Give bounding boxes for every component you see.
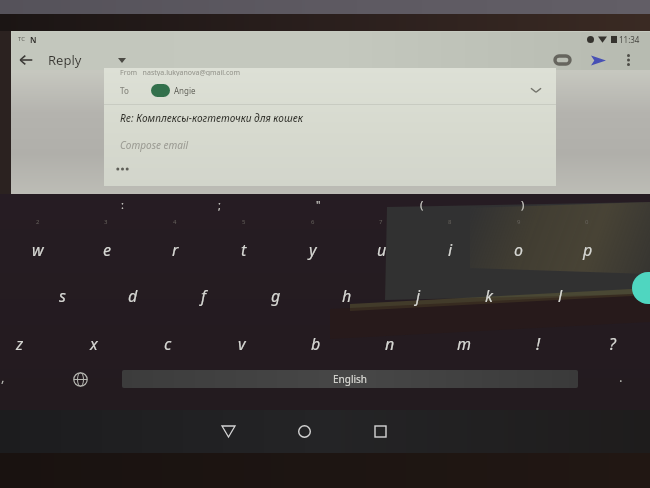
staticText: 5	[242, 218, 246, 226]
button[interactable]: b	[298, 330, 334, 358]
button[interactable]: g	[258, 282, 294, 310]
staticText: From nastya.lukyanova@gmail.com	[120, 68, 241, 76]
staticText: n	[385, 333, 395, 355]
staticText: ?	[609, 333, 616, 355]
staticText: ,	[1, 368, 5, 386]
button[interactable]: w	[20, 236, 56, 264]
button[interactable]: j	[400, 282, 436, 310]
staticText: b	[311, 333, 321, 355]
button[interactable]: .	[610, 366, 632, 388]
staticText: c	[164, 333, 172, 355]
staticText: Re: Комплексы-когтеточки для кошек	[120, 111, 303, 125]
staticText: :	[121, 197, 124, 212]
staticText: j	[416, 285, 421, 307]
button[interactable]: ?	[594, 330, 630, 358]
staticText: h	[342, 285, 352, 307]
button[interactable]: t	[226, 236, 262, 264]
staticText: !	[536, 333, 541, 355]
button[interactable]: Attach file	[550, 48, 574, 72]
button[interactable]: s	[44, 282, 80, 310]
button[interactable]: Send	[586, 48, 610, 72]
staticText: w	[32, 239, 44, 261]
staticText: (	[420, 197, 424, 212]
staticText: 6	[311, 218, 315, 226]
button[interactable]: v	[224, 330, 260, 358]
staticText: ;	[218, 197, 221, 212]
button[interactable]: Expand	[114, 52, 130, 68]
button[interactable]: More options	[618, 50, 638, 70]
staticText: 0	[585, 218, 589, 226]
button[interactable]: p	[570, 236, 606, 264]
staticText: t	[241, 239, 247, 261]
button[interactable]: k	[471, 282, 507, 310]
staticText: Compose email	[120, 138, 189, 152]
staticText: x	[90, 333, 98, 355]
staticText: p	[583, 239, 593, 261]
button[interactable]: l	[542, 282, 578, 310]
staticText: "	[316, 197, 321, 212]
staticText: TC	[18, 35, 26, 43]
staticText: d	[128, 285, 138, 307]
button[interactable]: u	[364, 236, 400, 264]
button[interactable]: z	[2, 330, 38, 358]
staticText: k	[485, 285, 493, 307]
staticText: .	[619, 368, 623, 386]
button[interactable]: Home	[288, 415, 320, 447]
button[interactable]: o	[501, 236, 537, 264]
button[interactable]: Recent apps	[364, 415, 396, 447]
staticText: Angie	[174, 85, 196, 96]
staticText: m	[457, 333, 472, 355]
button[interactable]: ,	[0, 366, 14, 388]
button[interactable]: i	[432, 236, 468, 264]
staticText: z	[16, 333, 24, 355]
button[interactable]: c	[150, 330, 186, 358]
staticText: 4	[173, 218, 177, 226]
button[interactable]: r	[157, 236, 193, 264]
staticText: To	[120, 85, 129, 96]
button[interactable]: n	[372, 330, 408, 358]
staticText: 2	[36, 218, 40, 226]
button[interactable]: Change keyboard language	[67, 366, 93, 392]
staticText: y	[309, 239, 317, 261]
staticText: )	[521, 197, 525, 212]
staticText: Reply	[48, 51, 82, 69]
staticText: s	[59, 285, 66, 307]
button[interactable]: h	[329, 282, 365, 310]
staticText: i	[448, 239, 453, 261]
button[interactable]: x	[76, 330, 112, 358]
staticText: 9	[517, 218, 521, 226]
button[interactable]: English	[122, 370, 578, 388]
staticText: l	[558, 285, 563, 307]
button[interactable]: f	[186, 282, 222, 310]
button[interactable]: e	[89, 236, 125, 264]
staticText: e	[103, 239, 111, 261]
button[interactable]: Back	[14, 48, 38, 72]
staticText: N	[30, 34, 37, 45]
button[interactable]: Compose	[632, 272, 650, 304]
staticText: 3	[104, 218, 108, 226]
staticText: 8	[448, 218, 452, 226]
button[interactable]: d	[115, 282, 151, 310]
button[interactable]: Back	[212, 415, 244, 447]
button[interactable]: m	[446, 330, 482, 358]
staticText: g	[271, 285, 281, 307]
staticText: o	[514, 239, 524, 261]
staticText: 11:34	[619, 34, 640, 45]
button[interactable]: y	[295, 236, 331, 264]
staticText: English	[333, 372, 368, 386]
staticText: f	[201, 285, 207, 307]
staticText: u	[377, 239, 387, 261]
button[interactable]: !	[520, 330, 556, 358]
staticText: 7	[379, 218, 383, 226]
staticText: v	[238, 333, 246, 355]
staticText: r	[172, 239, 179, 261]
button[interactable]: To	[120, 76, 542, 104]
